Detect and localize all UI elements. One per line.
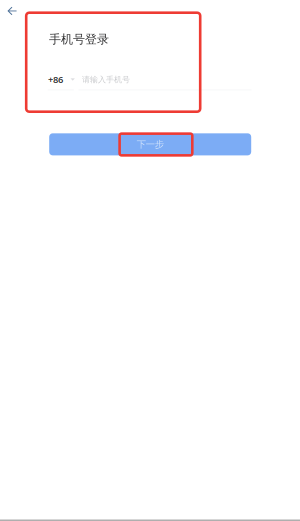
button[interactable]: 下一步 — [49, 133, 251, 155]
button[interactable]: Back — [0, 0, 24, 22]
staticText: +86 — [48, 73, 63, 86]
staticText: 手机号登录 — [49, 32, 109, 47]
staticText: 下一步 — [137, 139, 164, 150]
button[interactable]: 请输入手机号 — [82, 70, 250, 88]
staticText: 请输入手机号 — [82, 75, 130, 84]
button[interactable]: +86 — [48, 70, 76, 88]
